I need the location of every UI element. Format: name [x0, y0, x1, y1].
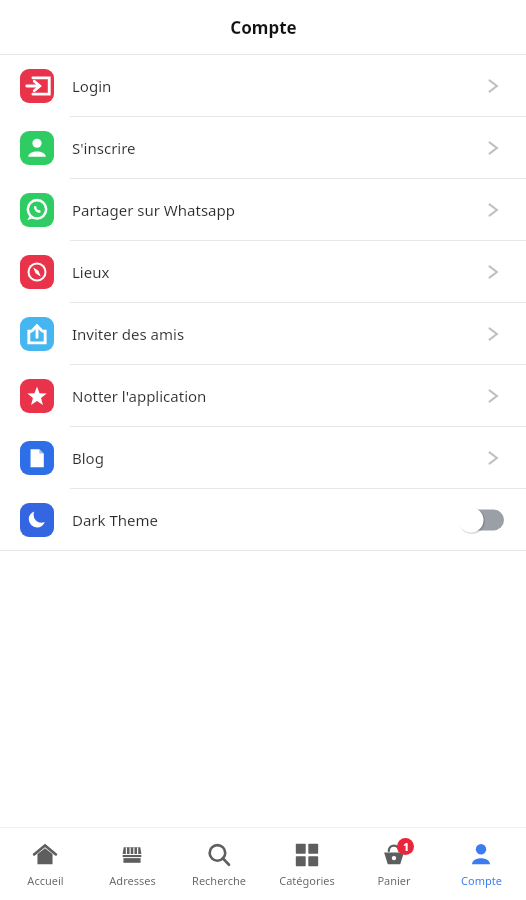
button[interactable]: Panier: [352, 836, 436, 892]
other: Compte: [468, 842, 494, 868]
staticText: Catégories: [279, 873, 335, 888]
button[interactable]: Compte: [439, 836, 523, 892]
staticText: Accueil: [27, 873, 64, 888]
staticText: 1: [403, 840, 409, 854]
button[interactable]: Login: [0, 55, 526, 117]
button[interactable]: Adresses: [90, 836, 174, 892]
button[interactable]: Blog: [0, 427, 526, 489]
other: Panier: [381, 842, 407, 868]
other: Recherche: [206, 842, 232, 868]
button[interactable]: Catégories: [265, 836, 349, 892]
staticText: Login: [72, 76, 112, 96]
button[interactable]: Dark Theme toggle: [458, 507, 504, 533]
staticText: Dark Theme: [72, 510, 159, 530]
button[interactable]: Recherche: [177, 836, 261, 892]
button[interactable]: Accueil: [3, 836, 87, 892]
staticText: Inviter des amis: [72, 324, 185, 344]
staticText: Partager sur Whatsapp: [72, 200, 235, 220]
button[interactable]: Partager sur Whatsapp: [0, 179, 526, 241]
staticText: Notter l'application: [72, 386, 207, 406]
button[interactable]: Lieux: [0, 241, 526, 303]
staticText: Recherche: [192, 873, 246, 888]
staticText: Adresses: [109, 873, 156, 888]
button[interactable]: Notter l'application: [0, 365, 526, 427]
staticText: Panier: [377, 873, 411, 888]
staticText: Compte: [230, 16, 297, 39]
button[interactable]: S'inscrire: [0, 117, 526, 179]
other: Accueil: [32, 842, 58, 868]
button[interactable]: Inviter des amis: [0, 303, 526, 365]
staticText: S'inscrire: [72, 138, 136, 158]
button[interactable]: Dark Theme: [0, 489, 526, 550]
other: Adresses: [119, 842, 145, 868]
staticText: Blog: [72, 448, 104, 468]
staticText: Compte: [461, 873, 502, 888]
other: Catégories: [294, 842, 320, 868]
staticText: Lieux: [72, 262, 110, 282]
